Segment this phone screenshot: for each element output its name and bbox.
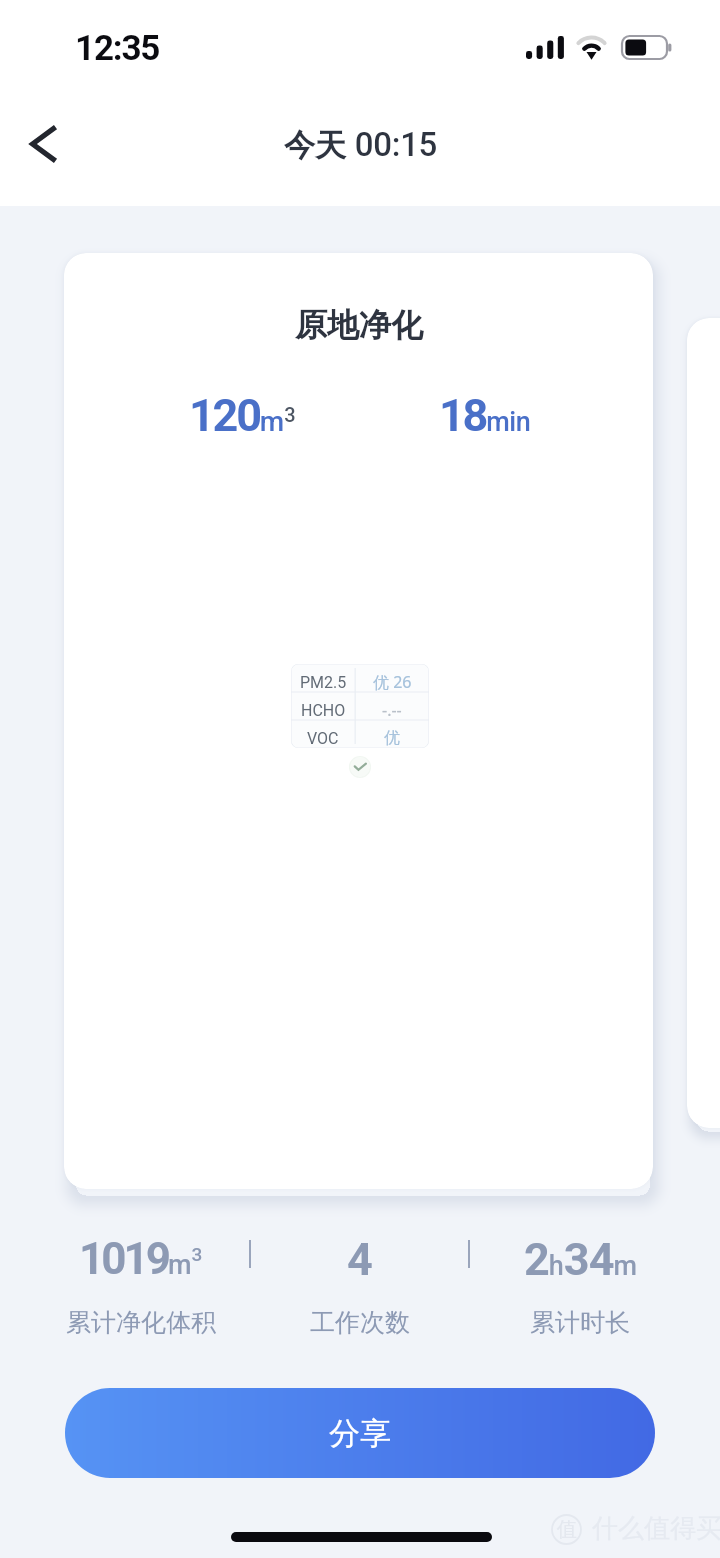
staticText: -.-- (382, 699, 402, 721)
staticText: HCHO (301, 701, 346, 720)
staticText: 12:35 (75, 28, 160, 69)
staticText: 累计时长 (530, 1307, 630, 1338)
button[interactable]: Back (10, 109, 80, 179)
staticText: 4 (347, 1233, 373, 1286)
staticText: 今天 00:15 (284, 125, 438, 165)
staticText: 优 26 (373, 671, 412, 693)
staticText: VOC (307, 729, 339, 748)
staticText: PM2.5 (300, 673, 347, 692)
staticText: 什么值得买 (592, 1512, 720, 1545)
staticText: 120m3 (189, 389, 296, 442)
staticText: 值 (557, 1517, 577, 1542)
staticText: 累计净化体积 (66, 1307, 216, 1338)
staticText: 18min (439, 389, 531, 442)
staticText: 1019m3 (79, 1233, 203, 1285)
button[interactable]: 原地净化 (64, 253, 653, 1189)
button[interactable]: 2h34m (470, 1233, 690, 1343)
staticText: 原地净化 (295, 305, 423, 345)
button[interactable]: 4 (250, 1233, 470, 1343)
staticText: 工作次数 (310, 1307, 410, 1338)
button[interactable]: 分享 (65, 1388, 655, 1478)
staticText: 优 (384, 728, 400, 748)
staticText: 分享 (329, 1414, 391, 1453)
button[interactable]: 1019m3 (31, 1233, 251, 1343)
staticText: 2h34m (524, 1233, 637, 1286)
